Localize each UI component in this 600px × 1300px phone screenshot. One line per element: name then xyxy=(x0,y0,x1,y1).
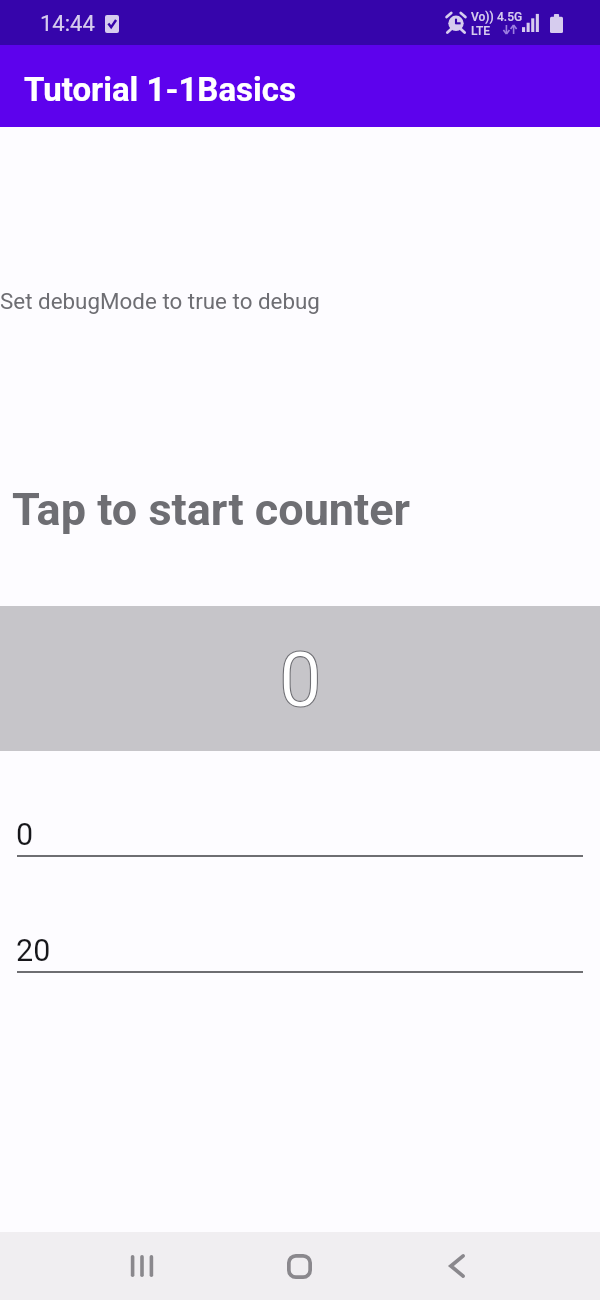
staticText: Tutorial 1-1Basics xyxy=(24,70,296,109)
staticText: 4.5G xyxy=(497,10,523,24)
staticText: 20 xyxy=(16,933,51,969)
staticText: Vo)) xyxy=(471,10,494,24)
button[interactable]: 20 xyxy=(17,933,583,973)
staticText: 0 xyxy=(16,817,34,853)
button[interactable]: 0 xyxy=(17,817,583,857)
staticText: Set debugMode to true to debug xyxy=(0,288,320,314)
staticText: Tap to start counter xyxy=(12,483,411,536)
staticText: 0 xyxy=(279,635,322,724)
staticText: 0 xyxy=(279,635,322,724)
staticText: 14:44 xyxy=(40,11,95,37)
button[interactable]: Recents xyxy=(102,1235,181,1297)
button[interactable]: Back xyxy=(417,1235,496,1297)
button[interactable]: 0 xyxy=(0,606,600,751)
staticText: LTE xyxy=(471,24,491,38)
button[interactable]: Home xyxy=(260,1235,339,1297)
